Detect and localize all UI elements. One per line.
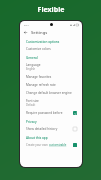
- button[interactable]: Customize colors: [22, 45, 80, 53]
- staticText: Customization options: [26, 40, 60, 44]
- staticText: Font size: [26, 99, 39, 103]
- staticText: Default: [26, 103, 36, 107]
- button[interactable]: Create your own: [22, 141, 80, 149]
- staticText: General: [26, 56, 38, 60]
- button[interactable]: Show detailed history: [22, 125, 80, 133]
- button[interactable]: Manage favorites: [22, 73, 80, 81]
- staticText: Flexible: [1, 5, 101, 15]
- staticText: Language: [26, 63, 41, 67]
- staticText: 9:41: [24, 23, 29, 26]
- staticText: English: [26, 67, 36, 71]
- button[interactable]: Font size: [22, 97, 80, 109]
- button[interactable]: Change default browser engine: [22, 89, 80, 97]
- button[interactable]: Language: [22, 61, 80, 73]
- staticText: Manage favorites: [26, 75, 52, 79]
- staticText: Customize colors: [26, 47, 51, 51]
- staticText: Require password before launching the ap…: [26, 111, 71, 115]
- button[interactable]: Manage refresh rate: [22, 81, 80, 89]
- staticText: Show detailed history: [26, 127, 58, 131]
- button[interactable]: Unchecked: [73, 127, 77, 131]
- staticText: customizable app: [49, 143, 71, 147]
- staticText: About this app: [26, 136, 48, 140]
- staticText: Manage refresh rate: [26, 83, 56, 87]
- staticText: Change default browser engine: [26, 91, 72, 95]
- staticText: Create your own: [26, 143, 49, 147]
- button[interactable]: Checked: [73, 111, 77, 115]
- staticText: Privacy: [26, 120, 37, 124]
- button[interactable]: Require password before launching the ap…: [22, 109, 80, 117]
- button[interactable]: Open link: [73, 143, 77, 147]
- button[interactable]: Back: [23, 30, 28, 35]
- staticText: Settings: [31, 30, 48, 36]
